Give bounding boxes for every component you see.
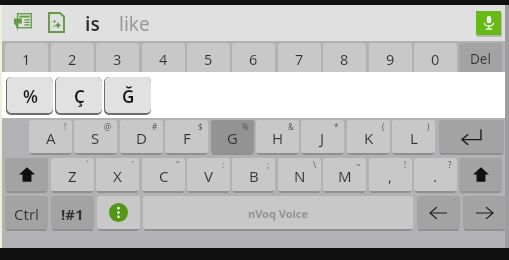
staticText: 5 — [204, 49, 213, 69]
staticText: 4 — [159, 49, 168, 69]
button[interactable]: C — [142, 158, 185, 191]
staticText: Ğ — [122, 85, 135, 108]
button[interactable]: 4 — [142, 43, 185, 72]
button[interactable]: Right — [463, 196, 506, 229]
staticText: . — [433, 166, 438, 186]
button[interactable]: J — [301, 120, 344, 153]
staticText: A — [46, 128, 56, 148]
button[interactable]: H — [256, 120, 299, 153]
staticText: * — [334, 121, 339, 132]
staticText: % — [23, 85, 38, 108]
button[interactable]: . — [414, 158, 457, 191]
button[interactable]: !#1 — [51, 196, 94, 229]
button[interactable]: X — [96, 158, 139, 191]
button[interactable]: Enter — [439, 120, 504, 153]
button[interactable]: 2 — [51, 43, 94, 72]
staticText: F — [183, 128, 191, 148]
button[interactable]: Ctrl — [5, 196, 48, 229]
staticText: % — [242, 121, 249, 132]
staticText: Del — [470, 50, 491, 68]
staticText: ) — [427, 121, 430, 132]
button[interactable]: D — [120, 120, 163, 153]
staticText: B — [249, 166, 259, 186]
button[interactable]: F — [165, 120, 208, 153]
staticText: S — [91, 128, 100, 148]
staticText: 9 — [386, 49, 395, 69]
staticText: ! — [404, 159, 407, 170]
staticText: 3 — [113, 49, 122, 69]
staticText: ' — [132, 159, 134, 170]
staticText: 0 — [431, 49, 440, 69]
button[interactable]: Suggestions — [46, 11, 66, 33]
staticText: is — [85, 11, 100, 37]
staticText: \ — [313, 159, 316, 170]
button[interactable]: Shift — [5, 158, 48, 191]
staticText: G — [227, 128, 238, 148]
staticText: 1 — [22, 49, 31, 69]
button[interactable]: 3 — [96, 43, 139, 72]
button[interactable]: , — [369, 158, 412, 191]
staticText: ? — [448, 159, 452, 170]
button[interactable]: M — [323, 158, 366, 191]
staticText: : — [222, 159, 225, 170]
staticText: H — [272, 128, 284, 148]
staticText: # — [152, 121, 158, 132]
button[interactable]: Left — [417, 196, 460, 229]
staticText: @ — [104, 121, 112, 132]
button[interactable]: Z — [51, 158, 94, 191]
button[interactable]: Shift — [459, 158, 502, 191]
staticText: 6 — [249, 49, 258, 69]
staticText: " — [176, 159, 180, 170]
button[interactable]: G — [211, 120, 254, 153]
button[interactable]: A — [29, 120, 72, 153]
staticText: ; — [267, 159, 270, 170]
button[interactable]: B — [232, 158, 275, 191]
button[interactable]: V — [187, 158, 230, 191]
button[interactable]: Voice input — [476, 11, 501, 35]
button[interactable]: 5 — [187, 43, 230, 72]
staticText: C — [159, 166, 169, 186]
button[interactable]: 6 — [232, 43, 275, 72]
staticText: X — [113, 166, 122, 186]
staticText: 7 — [295, 49, 304, 69]
button[interactable]: % — [6, 77, 53, 115]
button[interactable]: S — [74, 120, 117, 153]
staticText: $ — [198, 121, 203, 132]
staticText: D — [136, 128, 147, 148]
staticText: Ç — [74, 85, 85, 108]
staticText: nVoq Voice — [248, 206, 309, 221]
staticText: ! — [64, 121, 67, 132]
button[interactable]: Del — [459, 43, 502, 72]
staticText: Z — [68, 166, 77, 186]
button[interactable]: Paste — [13, 11, 33, 33]
button[interactable]: is — [79, 9, 105, 39]
staticText: Ctrl — [14, 204, 39, 224]
button[interactable]: Ğ — [104, 77, 151, 115]
staticText: ~ — [356, 159, 361, 170]
button[interactable]: nVoq Voice — [143, 196, 413, 229]
staticText: N — [294, 166, 306, 186]
button[interactable]: More options — [97, 196, 140, 229]
staticText: ( — [382, 121, 385, 132]
staticText: & — [288, 121, 294, 132]
button[interactable]: 8 — [323, 43, 366, 72]
staticText: like — [119, 11, 150, 37]
staticText: J — [320, 128, 325, 148]
staticText: !#1 — [61, 204, 84, 224]
staticText: 8 — [340, 49, 349, 69]
button[interactable]: 1 — [5, 43, 48, 72]
staticText: , — [388, 166, 393, 186]
button[interactable]: like — [114, 9, 154, 39]
button[interactable]: 0 — [414, 43, 457, 72]
button[interactable]: 7 — [278, 43, 321, 72]
staticText: L — [410, 128, 418, 148]
staticText: K — [364, 128, 374, 148]
button[interactable]: 9 — [369, 43, 412, 72]
button[interactable]: L — [392, 120, 435, 153]
button[interactable]: N — [278, 158, 321, 191]
button[interactable]: Ç — [55, 77, 102, 115]
staticText: M — [338, 166, 352, 186]
button[interactable]: K — [347, 120, 390, 153]
staticText: V — [204, 166, 214, 186]
staticText: ` — [86, 159, 89, 170]
